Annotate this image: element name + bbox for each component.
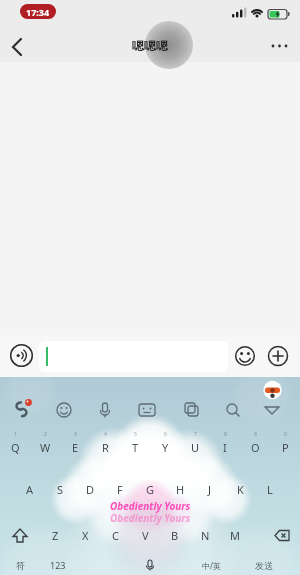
staticText: F xyxy=(117,482,123,497)
staticText: 嗯嗯嗯 xyxy=(132,38,168,53)
button[interactable]: W xyxy=(30,438,60,457)
button[interactable]: I xyxy=(210,438,240,457)
staticText: M xyxy=(230,528,240,543)
staticText: 7 xyxy=(194,431,197,438)
button[interactable]: V xyxy=(130,526,160,545)
staticText: K xyxy=(237,482,244,497)
button[interactable]: C xyxy=(100,526,130,545)
button[interactable]: E xyxy=(60,438,90,457)
staticText: J xyxy=(208,482,212,497)
button[interactable] xyxy=(178,399,205,422)
button[interactable]: O xyxy=(240,438,270,457)
button[interactable]: A xyxy=(15,480,45,499)
button[interactable]: T xyxy=(120,438,150,457)
staticText: H xyxy=(176,482,185,497)
staticText: 4 xyxy=(104,431,107,438)
button[interactable]: D xyxy=(75,480,105,499)
staticText: 5 xyxy=(134,431,137,438)
staticText: 0 xyxy=(284,431,287,438)
staticText: U xyxy=(191,440,200,455)
button[interactable] xyxy=(90,555,210,575)
button[interactable]: H xyxy=(165,480,195,499)
button[interactable] xyxy=(134,399,161,422)
staticText: D xyxy=(86,482,95,497)
staticText: P xyxy=(282,440,289,455)
button[interactable]: F xyxy=(105,480,135,499)
button[interactable]: Z xyxy=(40,526,70,545)
staticText: B xyxy=(171,528,179,543)
button[interactable]: B xyxy=(160,526,190,545)
button[interactable] xyxy=(266,36,294,56)
button[interactable]: Y xyxy=(150,438,180,457)
button[interactable]: 123 xyxy=(42,556,74,574)
button[interactable]: X xyxy=(70,526,100,545)
staticText: Obediently Yours xyxy=(110,499,191,513)
button[interactable] xyxy=(266,344,290,368)
button[interactable]: J xyxy=(195,480,225,499)
staticText: C xyxy=(112,528,119,543)
staticText: Obediently Yours xyxy=(110,511,191,525)
button[interactable] xyxy=(92,399,119,422)
button[interactable]: Q xyxy=(0,438,30,457)
button[interactable]: N xyxy=(190,526,220,545)
staticText: X xyxy=(82,528,89,543)
button[interactable]: L xyxy=(255,480,285,499)
button[interactable] xyxy=(259,399,286,422)
staticText: I xyxy=(223,440,227,455)
staticText: 1 xyxy=(14,431,17,438)
staticText: V xyxy=(142,528,149,543)
staticText: Z xyxy=(52,528,59,543)
button[interactable]: K xyxy=(225,480,255,499)
button[interactable]: S xyxy=(45,480,75,499)
button[interactable]: M xyxy=(220,526,250,545)
staticText: L xyxy=(267,482,273,497)
button[interactable]: R xyxy=(90,438,120,457)
button[interactable]: P xyxy=(270,438,300,457)
staticText: 2 xyxy=(44,431,47,438)
button[interactable] xyxy=(262,380,283,401)
staticText: 中/英 xyxy=(202,560,221,571)
button[interactable] xyxy=(4,34,30,60)
button[interactable] xyxy=(233,344,257,368)
button[interactable]: 发送 xyxy=(246,556,282,574)
staticText: A xyxy=(26,482,34,497)
staticText: S xyxy=(57,482,64,497)
staticText: G xyxy=(146,482,155,497)
staticText: T xyxy=(132,440,139,455)
staticText: 发送 xyxy=(255,560,273,571)
button[interactable] xyxy=(220,399,247,422)
staticText: O xyxy=(251,440,260,455)
staticText: R xyxy=(102,440,109,455)
staticText: W xyxy=(40,440,51,455)
staticText: 6 xyxy=(164,431,167,438)
button[interactable] xyxy=(266,526,294,545)
button[interactable]: G xyxy=(135,480,165,499)
staticText: Y xyxy=(162,440,169,455)
staticText: 17:34 xyxy=(26,6,50,18)
staticText: 3 xyxy=(74,431,77,438)
staticText: 符 xyxy=(16,560,25,571)
button[interactable]: U xyxy=(180,438,210,457)
staticText: N xyxy=(201,528,210,543)
button[interactable]: 符 xyxy=(6,556,34,574)
staticText: 8 xyxy=(224,431,227,438)
button[interactable] xyxy=(9,343,34,368)
button[interactable] xyxy=(51,399,78,422)
staticText: E xyxy=(72,440,79,455)
staticText: 9 xyxy=(254,431,257,438)
button[interactable] xyxy=(10,399,37,422)
button[interactable] xyxy=(8,526,32,546)
button[interactable]: 中/英 xyxy=(194,556,228,574)
staticText: 123 xyxy=(50,559,66,571)
staticText: Q xyxy=(11,440,20,455)
button[interactable] xyxy=(39,341,228,372)
